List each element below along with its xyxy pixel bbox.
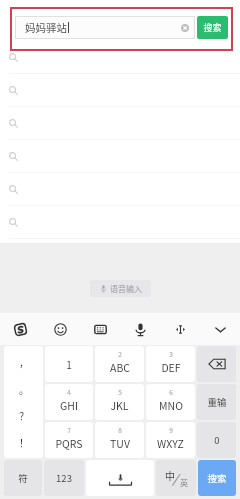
button[interactable] [0,41,240,74]
button[interactable]: 6 [146,384,195,420]
staticText: 123 [56,471,72,485]
staticText: 9 [169,425,173,434]
staticText: 8 [118,425,122,434]
button[interactable]: 7 [45,422,93,458]
staticText: 。 [19,382,29,396]
button[interactable]: 9 [146,422,195,458]
staticText: 0 [214,433,220,447]
staticText: 妈妈驿站 [25,20,67,35]
button[interactable]: 符 [4,460,42,496]
button[interactable]: Hide keyboard [200,313,240,345]
button[interactable]: 2 [95,346,144,382]
staticText: JKL [110,398,129,413]
staticText: 英 [180,477,188,489]
button[interactable]: 3 [146,346,195,382]
button[interactable]: 8 [95,422,144,458]
staticText: 搜索 [207,471,227,485]
other: Space [86,460,154,496]
button[interactable]: 1 [45,346,93,382]
button[interactable]: 搜索 [197,16,228,39]
staticText: 中 [165,468,175,482]
button[interactable]: 0 [197,422,236,458]
staticText: ？ [19,408,29,422]
staticText: 搜索 [203,21,222,34]
staticText: DEF [161,360,181,375]
staticText: PQRS [55,436,83,451]
button[interactable]: 妈妈驿站 [15,16,195,39]
button[interactable]: 4 [45,384,93,420]
button[interactable]: Keyboard layout [80,313,120,345]
button[interactable]: ， [4,346,43,458]
staticText: 2 [118,349,122,358]
button[interactable]: Emoji [40,313,80,345]
button[interactable]: Move cursor [160,313,200,345]
other: Switch Chinese English [163,468,189,488]
staticText: 重输 [207,395,227,409]
button[interactable]: Switch Chinese English [156,460,196,496]
staticText: 7 [67,425,71,434]
button[interactable]: 123 [44,460,84,496]
button[interactable]: Sogou logo [0,313,40,345]
staticText: ， [19,355,29,369]
button[interactable]: 搜索 [198,460,236,496]
staticText: 6 [169,387,173,396]
staticText: 语音输入 [110,283,142,295]
button[interactable]: Voice input [120,313,160,345]
staticText: 5 [118,387,122,396]
staticText: ABC [110,360,130,375]
staticText: ！ [19,435,29,449]
staticText: WXYZ [157,436,184,451]
staticText: 3 [169,349,173,358]
button[interactable]: Clear text [179,22,191,34]
button[interactable]: Backspace [197,346,236,382]
staticText: TUV [110,436,130,451]
button[interactable]: 语音输入 [90,280,151,297]
staticText: 符 [18,471,28,485]
button[interactable]: 5 [95,384,144,420]
other: Backspace [197,346,236,382]
staticText: GHI [60,398,78,413]
staticText: MNO [159,398,183,413]
staticText: 1 [66,357,72,371]
button[interactable]: 重输 [197,384,236,420]
button[interactable]: Space [86,460,154,496]
staticText: 4 [67,387,71,396]
